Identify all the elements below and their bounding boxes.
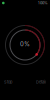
staticText: 0% [20,40,30,48]
staticText: Stop [4,80,12,84]
staticText: Detail [36,80,46,84]
staticText: 100% [38,1,48,5]
button[interactable]: Stop [4,80,12,84]
button[interactable]: Detail [36,80,46,84]
